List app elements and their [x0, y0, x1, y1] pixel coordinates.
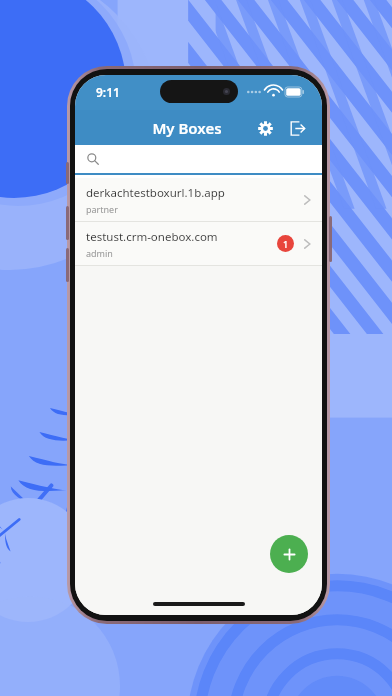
staticText: 9:11	[96, 84, 120, 100]
button[interactable]: Settings	[250, 113, 280, 143]
button[interactable]: derkachtestboxurl.1b.app	[75, 178, 322, 221]
button[interactable]: Add	[270, 535, 308, 573]
staticText: My Boxes	[152, 118, 222, 138]
staticText: 1	[283, 238, 289, 250]
staticText: partner	[86, 203, 118, 215]
staticText: testust.crm-onebox.com	[86, 229, 218, 245]
button[interactable]: testust.crm-onebox.com	[75, 222, 322, 265]
staticText: derkachtestboxurl.1b.app	[86, 185, 225, 201]
button[interactable]	[75, 145, 322, 173]
staticText: admin	[86, 247, 113, 259]
button[interactable]: Log out	[282, 113, 312, 143]
